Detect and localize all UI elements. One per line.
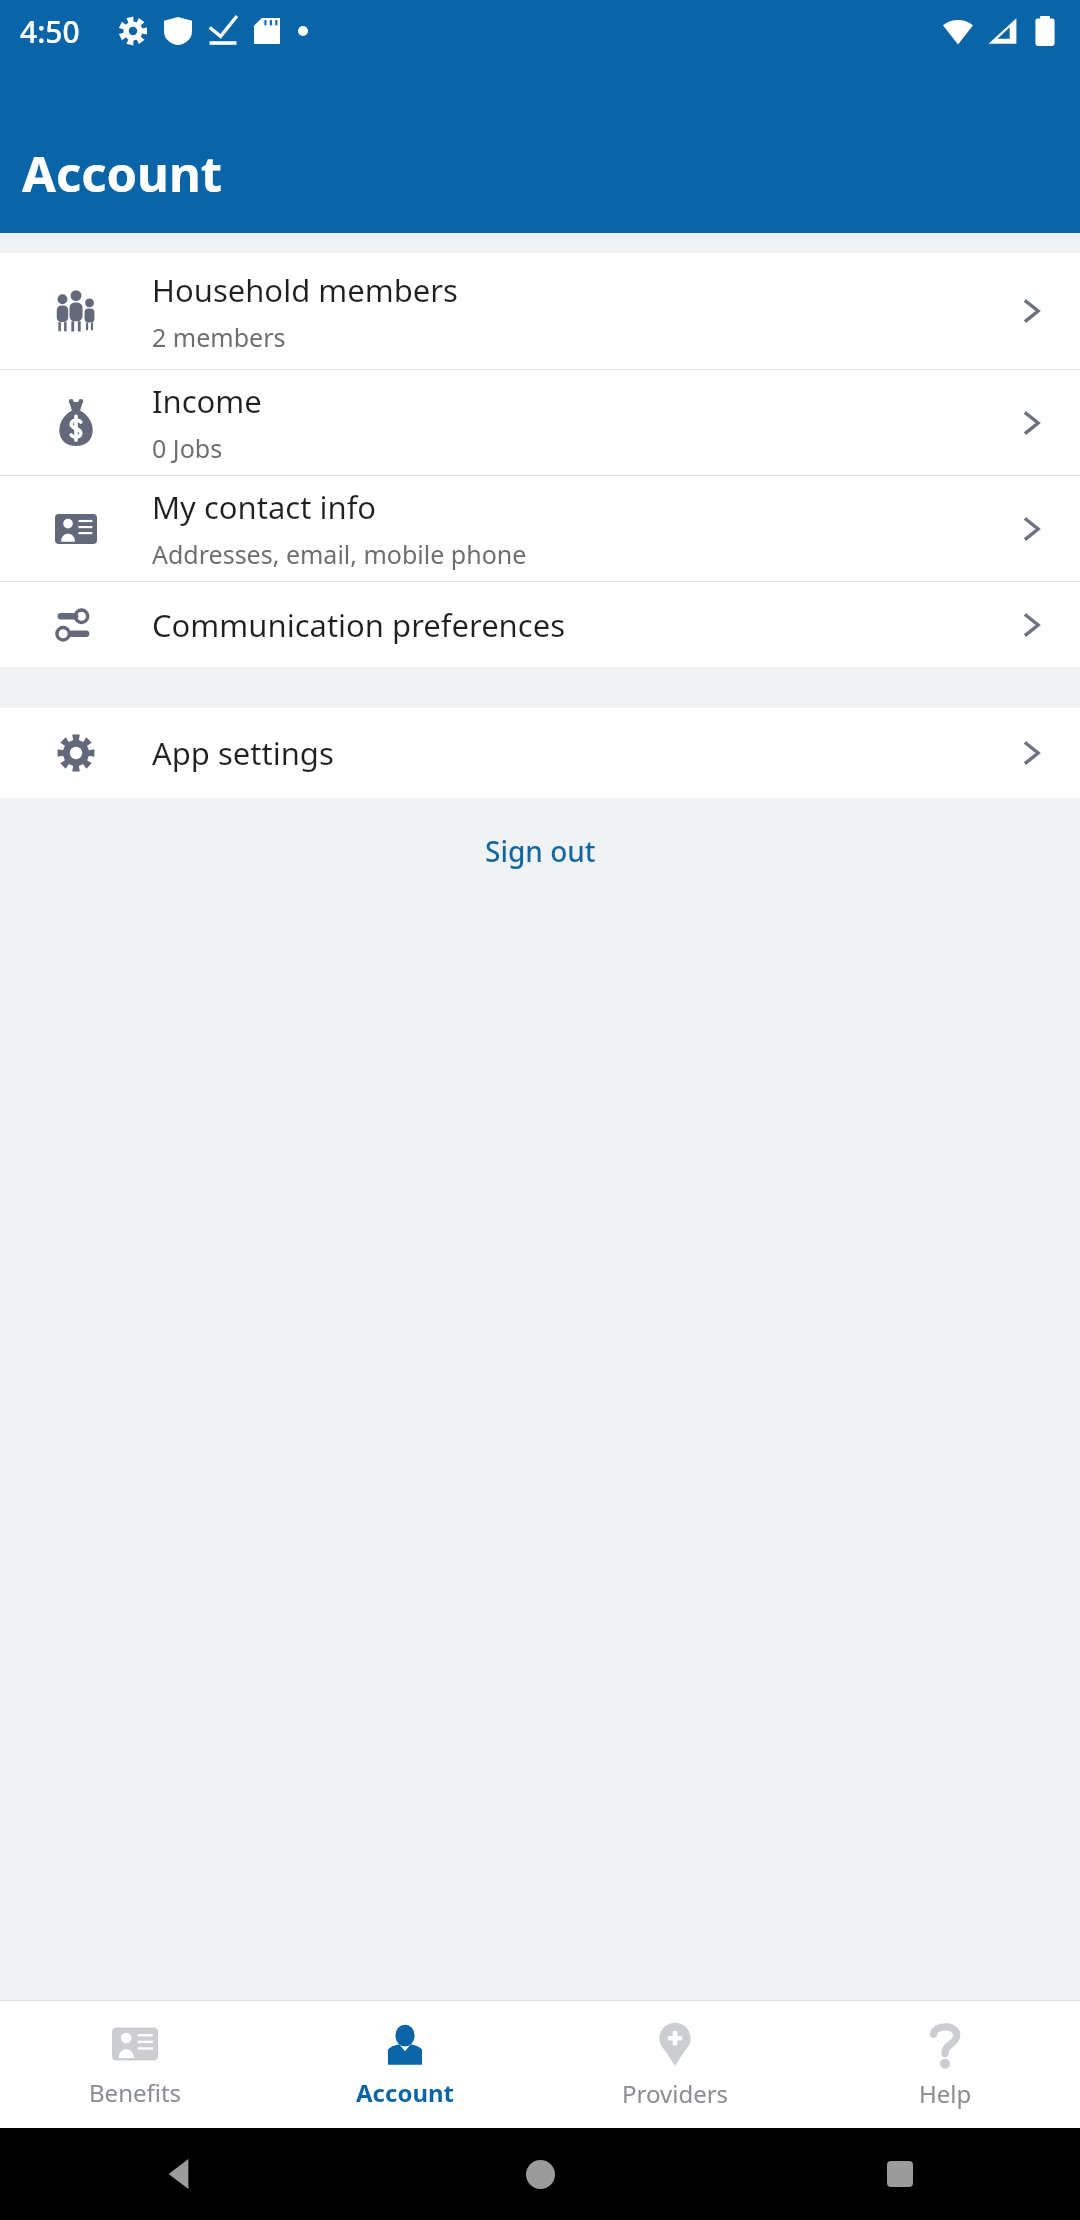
- other: Providers: [651, 2020, 699, 2068]
- staticText: 4:50: [20, 11, 80, 52]
- staticText: Income: [152, 380, 262, 422]
- staticText: 2 members: [152, 320, 286, 354]
- staticText: 0 Jobs: [152, 431, 223, 465]
- other: Account: [382, 2021, 428, 2067]
- staticText: Account: [356, 2076, 454, 2109]
- staticText: Addresses, email, mobile phone: [152, 537, 527, 571]
- button[interactable]: Contact card: [0, 2001, 270, 2128]
- other: Contact card: [112, 2021, 158, 2067]
- other: Communication preferences: [53, 602, 99, 648]
- staticText: Communication preferences: [152, 604, 565, 646]
- button[interactable]: Sign out: [459, 822, 622, 880]
- other: Income: [52, 399, 100, 447]
- staticText: Providers: [622, 2077, 729, 2110]
- staticText: Account: [22, 140, 223, 207]
- button[interactable]: Help: [810, 2001, 1080, 2128]
- staticText: Sign out: [485, 832, 596, 870]
- button[interactable]: Communication preferences: [0, 582, 1080, 667]
- staticText: Help: [919, 2077, 972, 2110]
- other: App settings: [56, 733, 96, 773]
- button[interactable]: Income: [0, 370, 1080, 475]
- button[interactable]: Household: [0, 253, 1080, 369]
- other: Help: [921, 2020, 969, 2068]
- staticText: Benefits: [89, 2076, 182, 2109]
- other: Contact card: [55, 508, 97, 550]
- button[interactable]: Contact card: [0, 476, 1080, 581]
- staticText: Household members: [152, 269, 458, 311]
- button[interactable]: Providers: [540, 2001, 810, 2128]
- button[interactable]: App settings: [0, 708, 1080, 798]
- other: Household: [50, 285, 102, 337]
- staticText: My contact info: [152, 486, 377, 528]
- staticText: App settings: [152, 732, 334, 774]
- button[interactable]: Account: [270, 2001, 540, 2128]
